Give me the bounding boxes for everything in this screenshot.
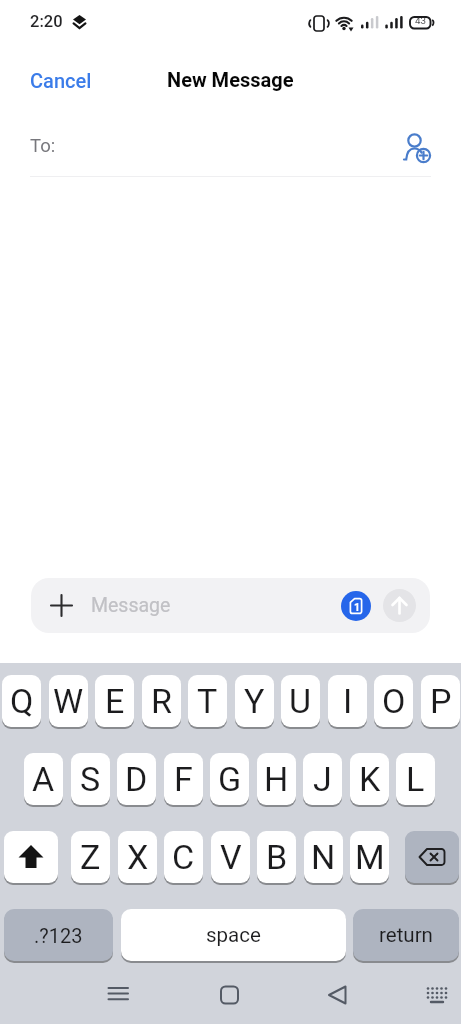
staticText: N — [311, 837, 336, 877]
button[interactable]: H — [257, 753, 296, 805]
button[interactable]: V — [211, 831, 250, 883]
button[interactable]: M — [350, 831, 389, 883]
staticText: Message — [91, 594, 171, 617]
button[interactable]: X — [118, 831, 157, 883]
staticText: 1 — [354, 601, 361, 613]
button[interactable]: N — [304, 831, 343, 883]
staticText: Cancel — [30, 69, 92, 92]
button[interactable]: B — [257, 831, 296, 883]
button[interactable]: Cancel — [30, 69, 92, 92]
staticText: C — [172, 837, 195, 877]
staticText: F — [174, 759, 193, 799]
staticText: space — [206, 923, 261, 947]
button[interactable]: space — [121, 909, 346, 961]
button[interactable]: .?123 — [4, 909, 113, 961]
staticText: L — [406, 759, 425, 799]
staticText: X — [127, 837, 149, 877]
button[interactable]: J — [303, 753, 342, 805]
button[interactable]: R — [142, 675, 181, 727]
staticText: Q — [10, 681, 34, 721]
button[interactable]: P — [421, 675, 460, 727]
staticText: M — [355, 837, 385, 877]
button[interactable] — [405, 831, 459, 883]
staticText: .?123 — [34, 924, 83, 947]
staticText: A — [32, 759, 55, 799]
staticText: V — [220, 837, 242, 877]
staticText: 43 — [415, 15, 427, 26]
staticText: K — [359, 759, 381, 799]
staticText: R — [151, 681, 172, 721]
button[interactable] — [383, 589, 416, 622]
button[interactable]: I — [328, 675, 367, 727]
staticText: P — [430, 681, 452, 721]
staticText: D — [125, 759, 148, 799]
button[interactable] — [318, 981, 358, 1017]
staticText: W — [53, 681, 84, 721]
button[interactable]: L — [396, 753, 435, 805]
button[interactable]: Y — [235, 675, 274, 727]
staticText: I — [343, 681, 353, 721]
button[interactable]: Message — [31, 578, 430, 633]
button[interactable]: O — [374, 675, 413, 727]
staticText: 2:20 — [30, 12, 63, 31]
button[interactable] — [98, 981, 138, 1017]
button[interactable]: G — [210, 753, 249, 805]
staticText: B — [266, 837, 288, 877]
staticText: G — [218, 759, 242, 799]
button[interactable]: U — [281, 675, 320, 727]
staticText: J — [313, 759, 332, 799]
button[interactable]: S — [71, 753, 110, 805]
button[interactable]: return — [353, 909, 459, 961]
staticText: H — [264, 759, 289, 799]
staticText: New Message — [167, 68, 294, 91]
button[interactable]: A — [24, 753, 63, 805]
button[interactable] — [4, 831, 58, 883]
staticText: U — [289, 681, 312, 721]
staticText: Y — [244, 681, 265, 721]
staticText: T — [197, 681, 218, 721]
button[interactable]: D — [117, 753, 156, 805]
button[interactable] — [418, 981, 458, 1017]
button[interactable]: K — [350, 753, 389, 805]
button[interactable]: T — [188, 675, 227, 727]
button[interactable] — [398, 127, 436, 167]
button[interactable]: 1 — [341, 591, 371, 621]
staticText: To: — [30, 135, 56, 157]
button[interactable]: F — [164, 753, 203, 805]
button[interactable]: Z — [71, 831, 110, 883]
staticText: S — [80, 759, 101, 799]
button[interactable]: W — [49, 675, 88, 727]
staticText: Z — [80, 837, 101, 877]
button[interactable] — [210, 981, 250, 1017]
staticText: E — [105, 681, 125, 721]
staticText: return — [379, 923, 433, 947]
button[interactable]: C — [164, 831, 203, 883]
staticText: O — [382, 681, 406, 721]
button[interactable]: E — [95, 675, 134, 727]
button[interactable]: Q — [2, 675, 41, 727]
